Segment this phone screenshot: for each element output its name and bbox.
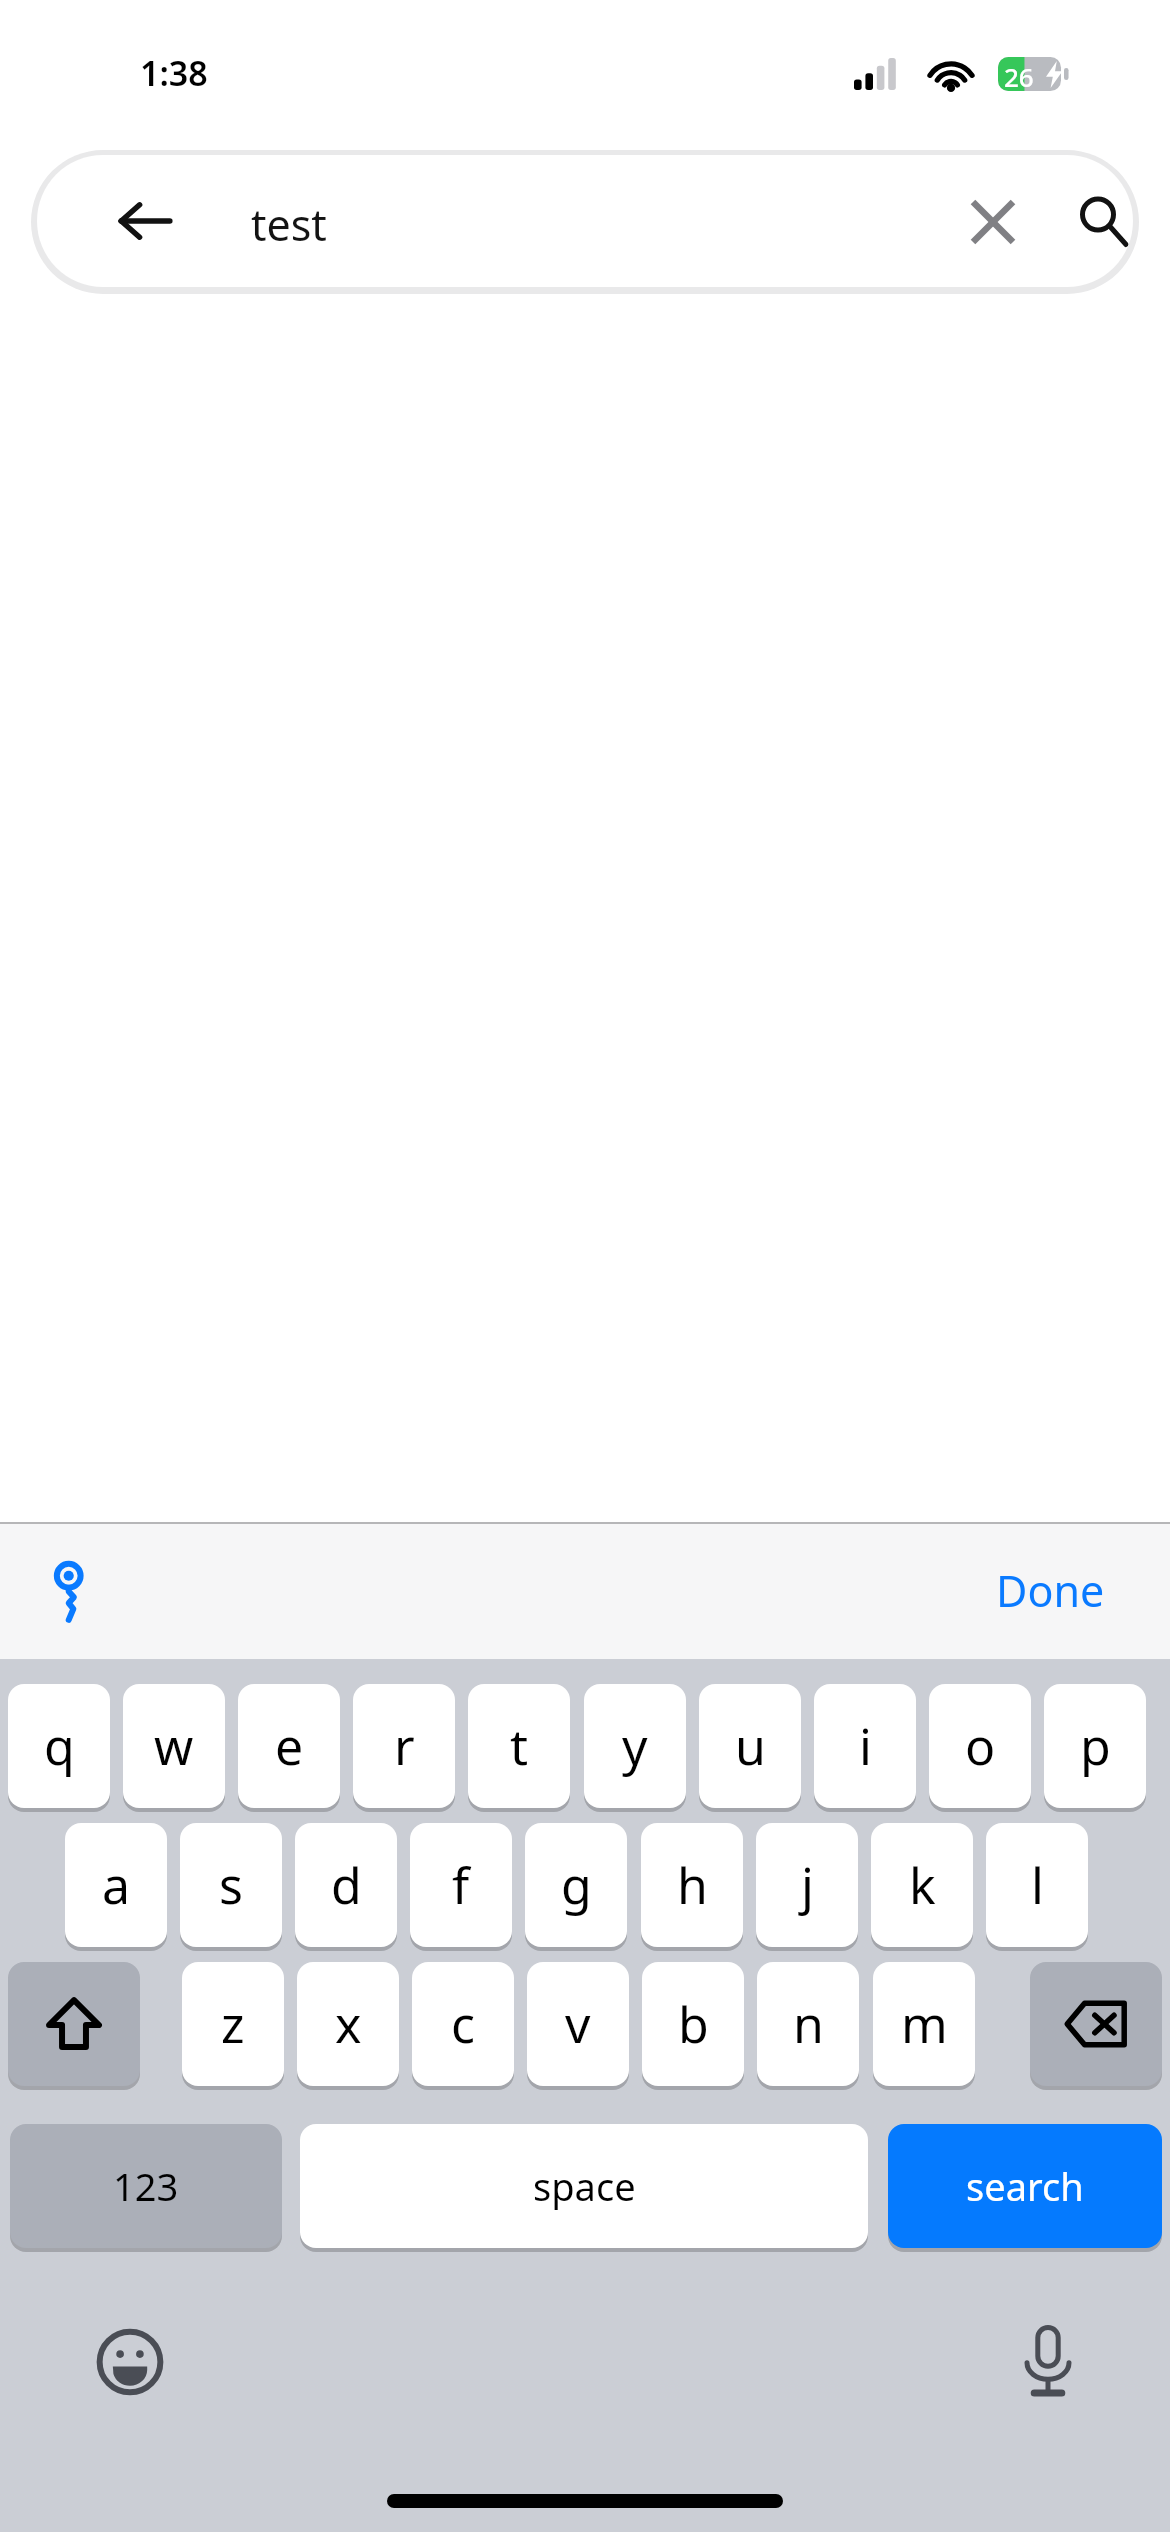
staticText: i: [859, 1712, 872, 1780]
button[interactable]: m: [873, 1962, 975, 2086]
button[interactable]: j: [756, 1823, 858, 1947]
staticText: d: [331, 1851, 362, 1919]
button[interactable]: Passwords: [30, 1544, 126, 1640]
staticText: w: [154, 1712, 194, 1780]
button[interactable]: 123: [10, 2124, 282, 2248]
button[interactable]: Shift: [8, 1962, 140, 2086]
button[interactable]: p: [1044, 1684, 1146, 1808]
staticText: p: [1080, 1712, 1111, 1780]
staticText: c: [451, 1990, 475, 2058]
button[interactable]: u: [699, 1684, 801, 1808]
staticText: search: [966, 2160, 1084, 2212]
button[interactable]: r: [353, 1684, 455, 1808]
button[interactable]: w: [123, 1684, 225, 1808]
button[interactable]: f: [410, 1823, 512, 1947]
staticText: l: [1031, 1851, 1044, 1919]
button[interactable]: v: [527, 1962, 629, 2086]
button[interactable]: a: [65, 1823, 167, 1947]
staticText: r: [394, 1712, 415, 1780]
button[interactable]: g: [525, 1823, 627, 1947]
staticText: space: [533, 2160, 636, 2212]
button[interactable]: b: [642, 1962, 744, 2086]
button[interactable]: h: [641, 1823, 743, 1947]
button[interactable]: e: [238, 1684, 340, 1808]
button[interactable]: x: [297, 1962, 399, 2086]
staticText: u: [735, 1712, 766, 1780]
staticText: t: [510, 1712, 529, 1780]
button[interactable]: Dictate: [1000, 2314, 1096, 2410]
staticText: e: [275, 1712, 304, 1780]
staticText: s: [219, 1851, 243, 1919]
staticText: j: [801, 1851, 814, 1919]
staticText: b: [678, 1990, 709, 2058]
staticText: Done: [996, 1561, 1105, 1620]
button[interactable]: z: [182, 1962, 284, 2086]
button[interactable]: t: [468, 1684, 570, 1808]
staticText: f: [452, 1851, 470, 1919]
staticText: y: [622, 1712, 648, 1780]
button[interactable]: Clear: [955, 184, 1031, 260]
button[interactable]: o: [929, 1684, 1031, 1808]
staticText: k: [909, 1851, 936, 1919]
staticText: a: [102, 1851, 131, 1919]
staticText: m: [901, 1990, 948, 2058]
staticText: q: [44, 1712, 75, 1780]
button[interactable]: space: [300, 2124, 868, 2248]
button[interactable]: Emoji: [82, 2314, 178, 2410]
staticText: 26: [1004, 59, 1034, 94]
button[interactable]: q: [8, 1684, 110, 1808]
button[interactable]: s: [180, 1823, 282, 1947]
button[interactable]: search: [888, 2124, 1162, 2248]
staticText: v: [565, 1990, 591, 2058]
button[interactable]: y: [584, 1684, 686, 1808]
button[interactable]: d: [295, 1823, 397, 1947]
button[interactable]: i: [814, 1684, 916, 1808]
staticText: z: [221, 1990, 245, 2058]
button[interactable]: Done: [975, 1544, 1125, 1636]
staticText: 123: [113, 2160, 179, 2212]
staticText: h: [677, 1851, 708, 1919]
staticText: x: [335, 1990, 362, 2058]
staticText: n: [793, 1990, 824, 2058]
button[interactable]: l: [986, 1823, 1088, 1947]
button[interactable]: Delete: [1030, 1962, 1162, 2086]
button[interactable]: k: [871, 1823, 973, 1947]
staticText: g: [561, 1851, 592, 1919]
staticText: test: [251, 195, 327, 254]
button[interactable]: Search: [1063, 181, 1133, 261]
button[interactable]: c: [412, 1962, 514, 2086]
button[interactable]: Back: [109, 185, 181, 257]
staticText: 1:38: [140, 50, 208, 96]
button[interactable]: n: [757, 1962, 859, 2086]
staticText: o: [965, 1712, 996, 1780]
button[interactable]: Back: [37, 155, 1133, 287]
